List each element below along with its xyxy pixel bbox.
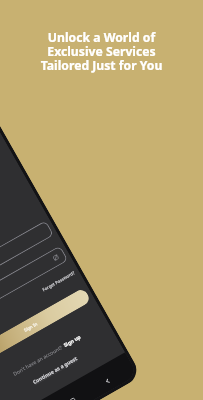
staticText: Sign In <box>23 320 39 333</box>
button[interactable]: Password <box>0 245 68 325</box>
button[interactable]: Home <box>68 396 78 400</box>
staticText: Continue as a guest <box>32 355 79 386</box>
staticText: Sign up <box>62 334 82 349</box>
button[interactable]: Back <box>103 376 112 386</box>
staticText: Unlock a World of Exclusive Services Tai… <box>0 29 203 74</box>
button[interactable]: Email <box>0 220 54 300</box>
staticText: Don't have an account? <box>12 344 64 378</box>
button[interactable]: Sign up <box>62 334 82 349</box>
button[interactable]: Continue as a guest <box>32 355 79 386</box>
button[interactable]: Forget Password? <box>0 267 77 340</box>
staticText: Forget Password? <box>41 269 76 292</box>
button[interactable]: Sign In <box>0 287 92 366</box>
